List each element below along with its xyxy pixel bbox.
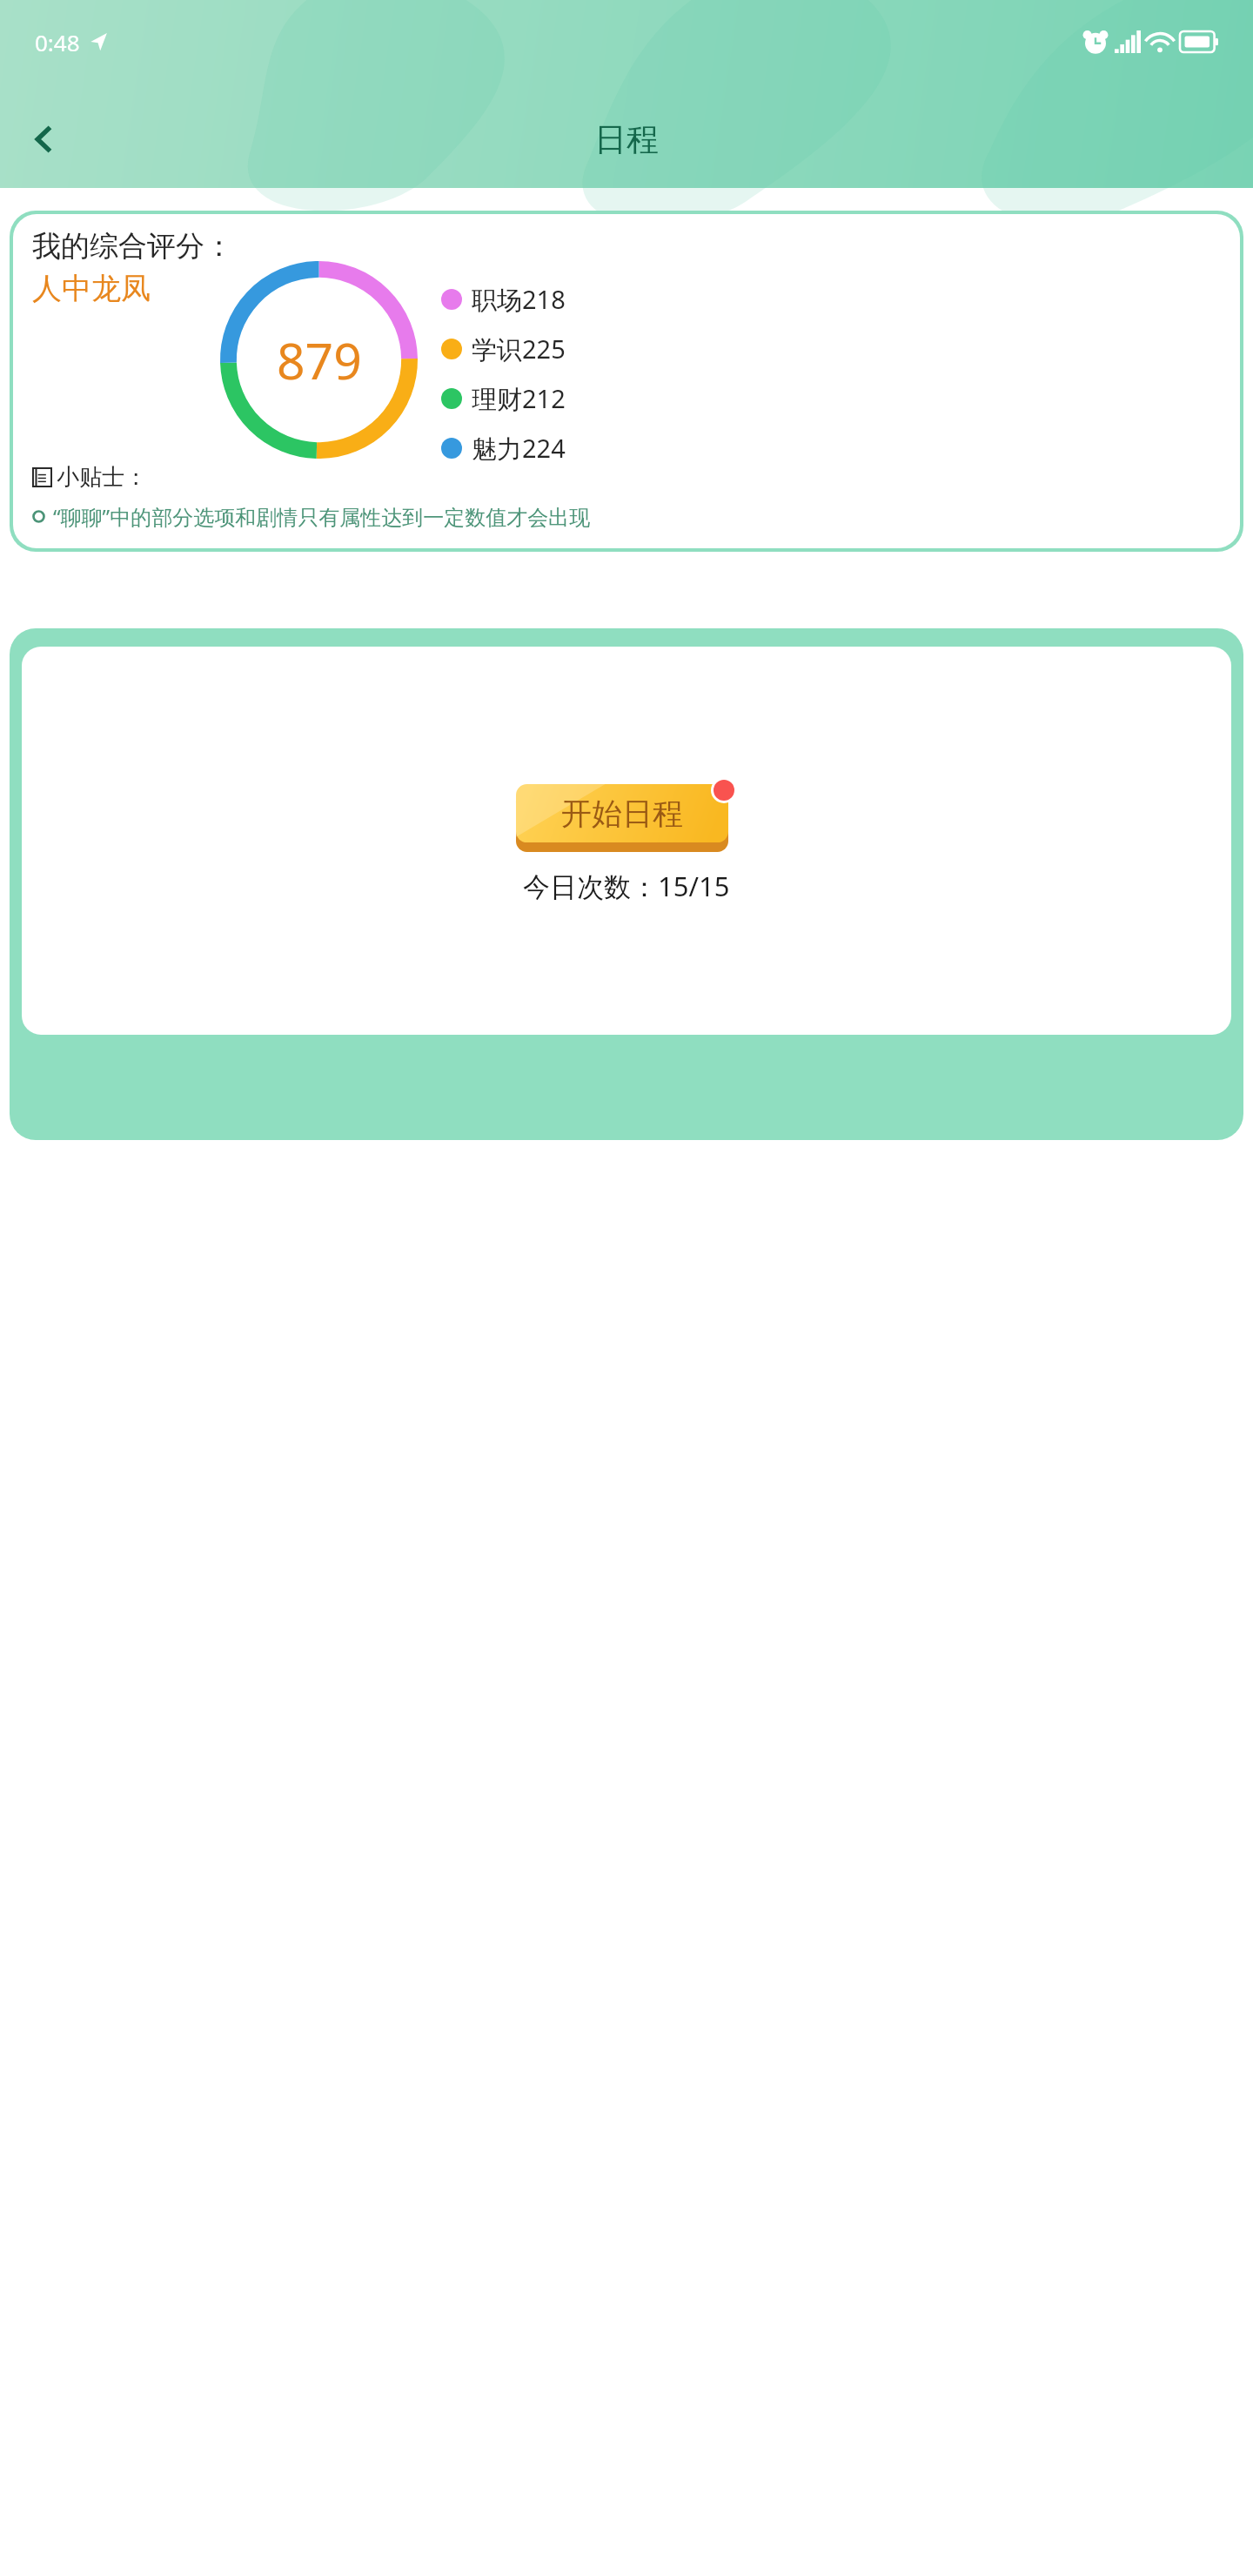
staticText: 魅力224 xyxy=(472,431,566,466)
staticText: 理财212 xyxy=(472,381,566,416)
staticText: 日程 xyxy=(594,119,659,160)
staticText: 开始日程 xyxy=(561,795,683,833)
staticText: 我的综合评分： xyxy=(32,228,233,265)
staticText: 人中龙凤 xyxy=(32,270,151,307)
staticText: 学识225 xyxy=(472,332,566,366)
staticText: 0:48 xyxy=(35,27,80,57)
staticText: “聊聊”中的部分选项和剧情只有属性达到一定数值才会出现 xyxy=(53,502,591,531)
staticText: 小贴士： xyxy=(57,463,147,492)
staticText: 879 xyxy=(277,326,362,394)
button[interactable]: Back xyxy=(16,111,71,167)
staticText: 今日次数：15/15 xyxy=(523,868,730,904)
button[interactable]: 开始日程 xyxy=(516,784,728,852)
button[interactable]: 我的综合评分： xyxy=(13,214,1240,548)
staticText: 职场218 xyxy=(472,282,566,317)
